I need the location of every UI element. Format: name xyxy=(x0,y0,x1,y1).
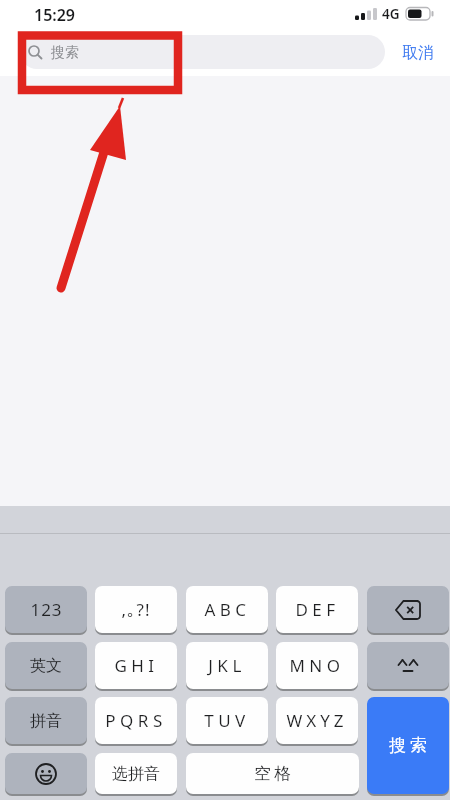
button[interactable]: 取消 xyxy=(402,40,448,66)
button[interactable]: ABC xyxy=(186,586,268,633)
button[interactable]: JKL xyxy=(186,642,268,689)
staticText: PQRS xyxy=(105,709,167,732)
staticText: 拼音 xyxy=(30,711,62,731)
staticText: 搜索 xyxy=(51,44,79,62)
button[interactable] xyxy=(5,753,87,794)
staticText: 取消 xyxy=(402,43,434,63)
staticText: ABC xyxy=(204,598,251,621)
button[interactable]: 选拼音 xyxy=(95,753,177,794)
staticText: DEF xyxy=(295,598,340,621)
staticText: 4G xyxy=(382,5,400,23)
staticText: 搜索 xyxy=(387,735,429,756)
staticText: MNO xyxy=(289,654,345,677)
button[interactable]: ,｡?! xyxy=(95,586,177,633)
button[interactable]: 搜索 xyxy=(367,697,449,794)
button[interactable]: MNO xyxy=(276,642,358,689)
staticText: ,｡?! xyxy=(121,598,151,621)
staticText: GHI xyxy=(114,654,159,677)
staticText: 15:29 xyxy=(34,4,76,26)
button[interactable]: 英文 xyxy=(5,642,87,689)
button[interactable]: 空格 xyxy=(186,753,359,794)
button[interactable]: TUV xyxy=(186,697,268,744)
button[interactable]: DEF xyxy=(276,586,358,633)
button[interactable] xyxy=(20,35,385,69)
staticText: WXYZ xyxy=(286,709,348,732)
button[interactable]: 123 xyxy=(5,586,87,633)
button[interactable]: WXYZ xyxy=(276,697,358,744)
staticText: 英文 xyxy=(30,656,62,676)
button[interactable] xyxy=(367,586,449,633)
button[interactable]: 拼音 xyxy=(5,697,87,744)
staticText: 空格 xyxy=(252,763,293,784)
staticText: 选拼音 xyxy=(112,764,160,784)
button[interactable] xyxy=(367,642,449,689)
staticText: JKL xyxy=(208,654,246,677)
staticText: TUV xyxy=(204,709,250,732)
button[interactable]: PQRS xyxy=(95,697,177,744)
staticText: 123 xyxy=(30,598,63,621)
button[interactable]: GHI xyxy=(95,642,177,689)
